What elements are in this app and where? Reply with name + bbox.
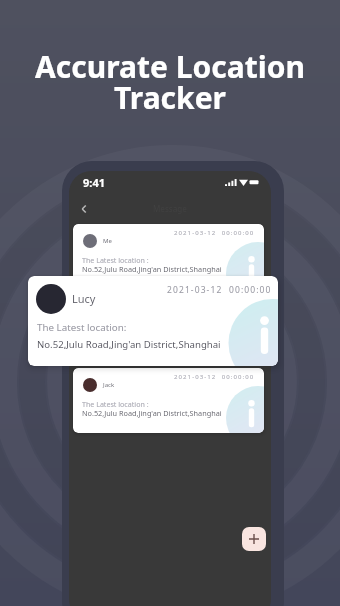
button[interactable]: Info [73,368,264,433]
staticText: The Latest location : [82,399,149,409]
button[interactable]: Add [242,527,266,551]
staticText: Me [103,237,112,245]
other: Info [260,316,269,355]
button[interactable]: Back [76,201,92,217]
staticText: No.52,Julu Road,Jing'an District,Shangha… [82,408,222,418]
staticText: The Latest location: [37,321,127,334]
staticText: No.52,Julu Road,Jing'an District,Shangha… [82,336,222,346]
staticText: 2021-03-12 00:00:00 [174,373,255,381]
staticText: The Latest location : [82,255,149,265]
button[interactable]: Info [73,224,264,289]
staticText: Jack [103,381,115,389]
other: Info [248,256,255,284]
staticText: Lucy [72,291,96,306]
staticText: 2021-03-12 00:00:00 [167,284,272,296]
staticText: 2021-03-12 00:00:00 [174,229,255,237]
staticText: No.52,Julu Road,Jing'an District,Shangha… [82,264,222,274]
staticText: The Latest location : [82,327,149,337]
staticText: Accurate Location Tracker [0,46,340,118]
other: Info [248,400,255,428]
staticText: No.52,Julu Road,Jing'an District,Shangha… [37,338,221,351]
button[interactable]: Info [73,296,264,361]
staticText: 9:41 [83,175,105,190]
staticText: 2021-03-12 00:00:00 [174,301,255,309]
button[interactable]: Info [28,276,278,366]
